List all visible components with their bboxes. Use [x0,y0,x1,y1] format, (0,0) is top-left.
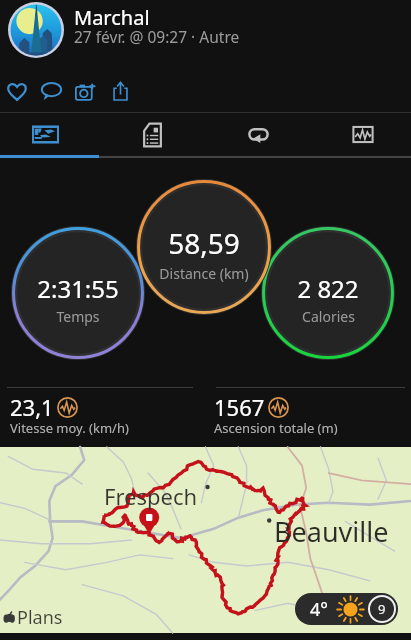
button[interactable]: Weather [295,593,398,625]
staticText: Plans [17,605,63,630]
button[interactable]: 58,59 [136,179,272,315]
button[interactable]: 2 822 [261,226,395,360]
button[interactable]: Profile [8,2,64,58]
staticText: 2 822 [297,272,359,305]
staticText: Frespech [104,481,198,511]
staticText: 9 [378,600,386,618]
staticText: Marchal [74,4,150,31]
staticText: Temps [56,307,100,326]
button[interactable]: 23,1 [10,392,200,440]
staticText: 4° [310,597,328,622]
button[interactable]: Add photo [68,75,102,109]
staticText: Distance (km) [159,264,249,283]
button[interactable]: Like [0,74,34,108]
button[interactable]: Apple Plans [2,605,63,630]
button[interactable]: 1567 [214,392,404,440]
staticText: Vitesse moy. (km/h) [10,419,129,437]
staticText: 1567 [214,392,265,422]
staticText: Ascension totale (m) [214,419,338,437]
button[interactable]: Share [103,74,137,108]
staticText: 27 févr. @ 09:27 · Autre [74,26,240,47]
button[interactable]: 2:31:55 [11,226,145,360]
button[interactable]: Charts [331,113,395,155]
button[interactable]: Details [120,114,184,156]
button[interactable]: Laps [226,114,290,156]
staticText: 58,59 [168,224,240,262]
staticText: Beauville [274,513,389,550]
staticText: 23,1 [10,392,54,422]
staticText: Calories [302,307,355,326]
button[interactable]: Frespech [0,447,411,633]
staticText: 2:31:55 [37,272,119,305]
button[interactable]: Comment [34,74,68,108]
button[interactable]: Photos [13,113,77,155]
